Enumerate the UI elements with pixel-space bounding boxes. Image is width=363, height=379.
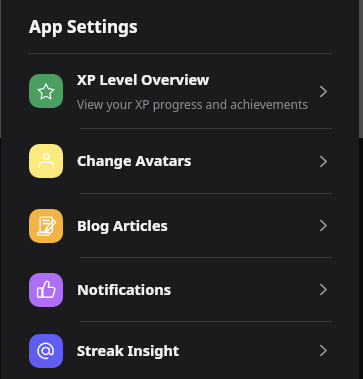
other: Open xyxy=(320,86,327,97)
other: Open xyxy=(320,284,327,295)
other: Open xyxy=(320,156,327,167)
staticText: Notifications xyxy=(77,279,171,299)
staticText: View your XP progress and achievements xyxy=(77,96,309,112)
other: Open xyxy=(320,345,327,356)
other: Open xyxy=(320,220,327,231)
button[interactable]: Streak Insight xyxy=(0,322,363,379)
button[interactable]: Blog Articles xyxy=(0,194,363,257)
staticText: Blog Articles xyxy=(77,215,168,235)
staticText: Change Avatars xyxy=(77,150,192,170)
staticText: App Settings xyxy=(29,15,138,38)
button[interactable]: Notifications xyxy=(0,258,363,321)
staticText: XP Level Overview xyxy=(77,69,210,89)
button[interactable]: Change Avatars xyxy=(0,129,363,193)
staticText: Streak Insight xyxy=(77,340,180,360)
button[interactable]: XP Level Overview xyxy=(0,54,363,128)
